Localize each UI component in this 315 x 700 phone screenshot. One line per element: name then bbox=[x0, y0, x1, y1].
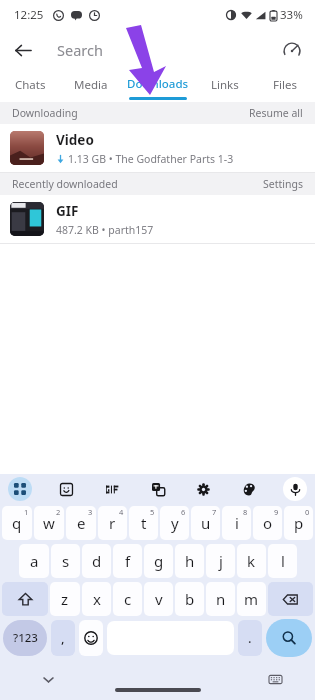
button[interactable]: r bbox=[98, 506, 127, 540]
staticText: Media bbox=[74, 77, 108, 93]
staticText: e bbox=[77, 513, 86, 533]
staticText: 487.2 KB • parth157 bbox=[56, 223, 154, 237]
staticText: 1 bbox=[24, 507, 29, 517]
staticText: t bbox=[141, 513, 147, 533]
button[interactable]: Switch keyboard bbox=[263, 667, 287, 691]
staticText: Chats bbox=[15, 77, 46, 93]
button[interactable]: Settings bbox=[263, 177, 303, 191]
button[interactable]: Shift bbox=[2, 582, 48, 616]
button[interactable]: u bbox=[191, 506, 220, 540]
button[interactable]: . bbox=[238, 620, 262, 656]
button[interactable]: t bbox=[129, 506, 158, 540]
staticText: c bbox=[124, 589, 132, 609]
button[interactable]: Resume all bbox=[249, 106, 303, 120]
staticText: g bbox=[154, 551, 164, 571]
staticText: Search bbox=[57, 40, 103, 60]
button[interactable]: n bbox=[206, 582, 235, 616]
button[interactable]: , bbox=[51, 620, 75, 656]
button[interactable]: Stickers bbox=[54, 477, 78, 501]
button[interactable]: Themes bbox=[237, 477, 261, 501]
staticText: 12:25 bbox=[14, 7, 44, 23]
button[interactable]: j bbox=[206, 544, 235, 578]
button[interactable]: a bbox=[19, 544, 49, 578]
staticText: l bbox=[281, 551, 285, 571]
button[interactable]: ?123 bbox=[3, 620, 47, 656]
button[interactable]: GIF bbox=[0, 195, 315, 243]
button[interactable]: Voice input bbox=[283, 477, 307, 501]
button[interactable]: b bbox=[175, 582, 204, 616]
staticText: x bbox=[93, 589, 101, 609]
staticText: a bbox=[30, 551, 39, 571]
staticText: u bbox=[201, 513, 211, 533]
staticText: Downloads bbox=[127, 76, 189, 92]
button[interactable]: l bbox=[268, 544, 297, 578]
staticText: k bbox=[247, 551, 256, 571]
button[interactable]: e bbox=[66, 506, 96, 540]
button[interactable]: Settings bbox=[191, 477, 215, 501]
staticText: r bbox=[109, 513, 116, 533]
staticText: q bbox=[12, 513, 22, 533]
button[interactable]: f bbox=[113, 544, 142, 578]
staticText: Resume all bbox=[249, 106, 303, 120]
staticText: 6 bbox=[181, 507, 186, 517]
staticText: y bbox=[171, 513, 179, 533]
button[interactable]: Apps bbox=[8, 477, 32, 501]
button[interactable]: h bbox=[175, 544, 204, 578]
button[interactable]: Downloads bbox=[121, 70, 195, 102]
staticText: 4 bbox=[119, 507, 124, 517]
button[interactable]: Chats bbox=[0, 70, 61, 102]
staticText: 7 bbox=[212, 507, 217, 517]
button[interactable]: Search bbox=[266, 619, 312, 657]
button[interactable]: Data usage bbox=[275, 33, 309, 67]
staticText: d bbox=[92, 551, 102, 571]
button[interactable]: d bbox=[82, 544, 111, 578]
staticText: m bbox=[244, 589, 259, 609]
button[interactable]: q bbox=[2, 506, 32, 540]
button[interactable]: Media bbox=[61, 70, 121, 102]
staticText: s bbox=[62, 551, 70, 571]
staticText: o bbox=[263, 513, 273, 533]
button[interactable]: Emoji bbox=[79, 620, 103, 656]
button[interactable]: Translate bbox=[146, 477, 170, 501]
button[interactable]: Backspace bbox=[268, 582, 313, 616]
button[interactable]: p bbox=[284, 506, 313, 540]
button[interactable]: i bbox=[222, 506, 251, 540]
staticText: 8 bbox=[243, 507, 248, 517]
button[interactable]: z bbox=[50, 582, 80, 616]
button[interactable]: c bbox=[113, 582, 142, 616]
button[interactable]: v bbox=[144, 582, 173, 616]
staticText: b bbox=[185, 589, 195, 609]
button[interactable]: Hide keyboard bbox=[36, 667, 60, 691]
staticText: n bbox=[216, 589, 226, 609]
button[interactable]: Files bbox=[255, 70, 315, 102]
button[interactable]: w bbox=[34, 506, 64, 540]
staticText: Video bbox=[56, 131, 94, 149]
button[interactable]: Links bbox=[195, 70, 255, 102]
button[interactable]: m bbox=[237, 582, 266, 616]
button[interactable]: s bbox=[51, 544, 80, 578]
button[interactable]: g bbox=[144, 544, 173, 578]
button[interactable]: y bbox=[160, 506, 189, 540]
staticText: Downloading bbox=[12, 106, 78, 120]
staticText: 5 bbox=[150, 507, 155, 517]
staticText: i bbox=[235, 513, 239, 533]
staticText: ?123 bbox=[13, 630, 38, 646]
staticText: Settings bbox=[263, 177, 303, 191]
staticText: w bbox=[43, 513, 55, 533]
staticText: z bbox=[61, 589, 69, 609]
staticText: 0 bbox=[305, 507, 310, 517]
staticText: j bbox=[219, 551, 223, 571]
button[interactable]: Video bbox=[0, 124, 315, 172]
button[interactable]: o bbox=[253, 506, 282, 540]
button[interactable]: Back bbox=[6, 33, 40, 67]
staticText: , bbox=[61, 629, 65, 647]
button[interactable]: k bbox=[237, 544, 266, 578]
staticText: h bbox=[185, 551, 195, 571]
staticText: 2 bbox=[56, 507, 61, 517]
staticText: Recently downloaded bbox=[12, 177, 118, 191]
button[interactable]: GIF bbox=[100, 477, 124, 501]
button[interactable]: x bbox=[82, 582, 111, 616]
staticText: GIF bbox=[56, 202, 79, 220]
staticText: 33% bbox=[280, 7, 303, 23]
